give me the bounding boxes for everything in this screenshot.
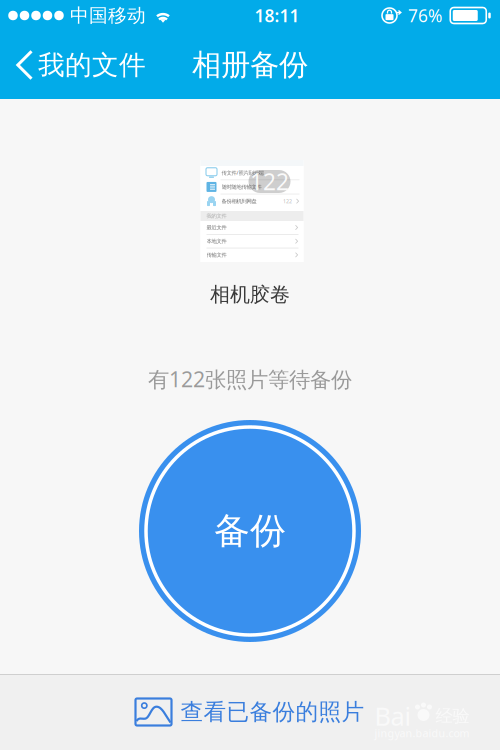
staticText: 中国移动 xyxy=(70,4,146,27)
staticText: 我的文件 xyxy=(206,213,226,219)
staticText: 76% xyxy=(408,4,442,27)
staticText: 传输文件 xyxy=(206,252,226,258)
staticText: 本地文件 xyxy=(206,238,226,244)
staticText: 传文件/照片到云端 xyxy=(221,169,263,176)
staticText: 相机胶卷 xyxy=(210,282,290,307)
button[interactable]: 我的文件 xyxy=(0,39,156,91)
button[interactable]: 备份 xyxy=(139,420,361,642)
staticText: 最近文件 xyxy=(206,224,226,231)
staticText: 122 xyxy=(250,166,289,196)
staticText: 备份相机到网盘 xyxy=(221,198,256,204)
staticText: 备份 xyxy=(214,509,286,553)
staticText: 有122张照片等待备份 xyxy=(148,365,352,393)
staticText: Bai xyxy=(374,699,411,733)
staticText: 18:11 xyxy=(254,4,299,27)
staticText: 查看已备份的照片 xyxy=(180,698,364,726)
staticText: 我的文件 xyxy=(38,49,146,81)
staticText: 随时随地传输文件 xyxy=(221,184,261,190)
staticText: 122 xyxy=(283,198,292,205)
button[interactable]: 查看已备份的照片 xyxy=(0,674,500,750)
staticText: 相册备份 xyxy=(192,47,308,83)
